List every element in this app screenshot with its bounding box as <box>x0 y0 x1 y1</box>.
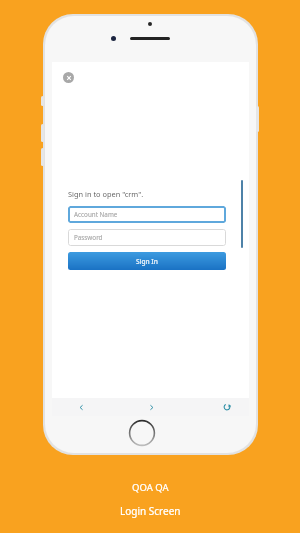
staticText: Sign In <box>136 257 158 266</box>
staticText: Password <box>74 233 103 242</box>
button[interactable]: Reload <box>220 400 234 414</box>
staticText: QOA QA <box>132 481 169 494</box>
button[interactable]: Back <box>74 400 88 414</box>
button[interactable]: Forward <box>144 400 158 414</box>
staticText: Login Screen <box>120 504 181 518</box>
staticText: Sign in to open "crm". <box>68 189 144 199</box>
button[interactable]: Home <box>129 420 155 446</box>
button[interactable]: Account Name <box>68 206 226 223</box>
button[interactable]: Close <box>63 72 74 83</box>
staticText: Account Name <box>74 210 118 219</box>
button[interactable]: Sign In <box>68 252 226 270</box>
button[interactable]: Password <box>68 229 226 246</box>
